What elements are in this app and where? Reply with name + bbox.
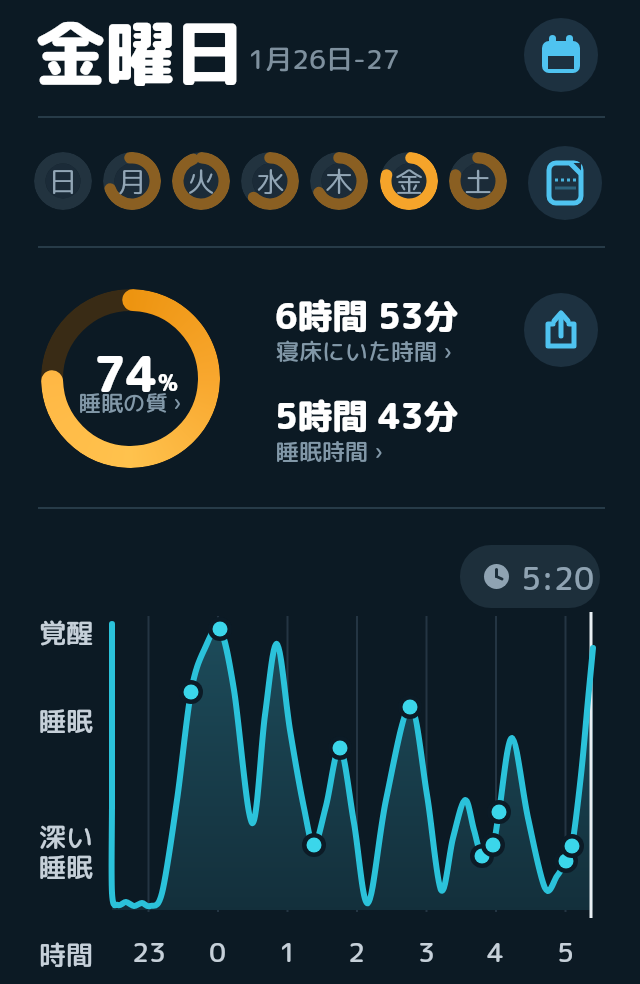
staticText: 月	[118, 162, 147, 201]
staticText: 1月26日-27	[248, 40, 400, 78]
staticText: 5	[557, 933, 575, 971]
button[interactable]: 水	[241, 152, 299, 210]
button[interactable]	[524, 18, 598, 92]
button[interactable]: 日	[34, 152, 92, 210]
button[interactable]: 木	[310, 152, 368, 210]
button[interactable]: 5:20	[460, 545, 600, 608]
staticText: 木	[325, 162, 354, 201]
staticText: 水	[256, 162, 285, 201]
button[interactable]: 月	[103, 152, 161, 210]
staticText: 覚醒	[39, 614, 93, 652]
staticText: 6時間 53分	[275, 291, 459, 340]
button[interactable]: 6時間 53分	[275, 291, 459, 340]
staticText: 睡眠	[39, 848, 93, 886]
staticText: 0	[209, 933, 227, 971]
staticText: 23	[132, 933, 167, 971]
staticText: 土	[464, 162, 493, 201]
staticText: 3	[418, 933, 436, 971]
button[interactable]: 5時間 43分	[275, 391, 459, 440]
staticText: 火	[187, 162, 216, 201]
staticText: 睡眠時間 ›	[276, 435, 383, 467]
staticText: 1	[279, 933, 297, 971]
staticText: 深い	[39, 818, 93, 856]
staticText: %	[158, 367, 178, 398]
button[interactable]	[524, 293, 598, 367]
staticText: 2	[348, 933, 366, 971]
staticText: 4	[487, 933, 505, 971]
staticText: 睡眠	[39, 702, 93, 740]
button[interactable]: 金	[380, 152, 438, 210]
staticText: 金	[395, 162, 424, 201]
button[interactable]: 土	[449, 152, 507, 210]
staticText: 金曜日	[35, 4, 245, 102]
staticText: 74	[94, 339, 158, 407]
staticText: 5:20	[521, 556, 595, 601]
staticText: 5時間 43分	[275, 391, 459, 440]
staticText: 睡眠の質 ›	[79, 387, 182, 418]
staticText: 日	[49, 162, 78, 201]
button[interactable]	[528, 146, 602, 220]
button[interactable]: 74	[41, 289, 220, 468]
button[interactable]: 火	[172, 152, 230, 210]
staticText: 時間	[39, 936, 93, 974]
staticText: 寝床にいた時間 ›	[276, 335, 452, 367]
